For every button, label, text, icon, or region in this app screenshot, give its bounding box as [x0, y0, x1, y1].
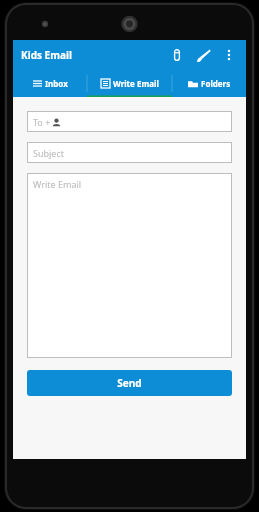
button[interactable]: Theme	[190, 42, 216, 68]
staticText: Write Email	[33, 178, 82, 190]
button[interactable]: Write Email	[87, 70, 172, 97]
staticText: Subject	[33, 147, 65, 159]
staticText: Folders	[201, 78, 231, 89]
staticText: Write Email	[113, 78, 159, 89]
button[interactable]: To +	[27, 111, 232, 132]
button[interactable]: Write Email	[27, 173, 232, 358]
button[interactable]: More options	[216, 42, 242, 68]
button[interactable]: Send	[27, 370, 232, 396]
button[interactable]: Subject	[27, 142, 232, 163]
button[interactable]: Attach file	[164, 42, 190, 68]
staticText: Kids Email	[21, 48, 72, 62]
staticText: Inbox	[45, 78, 68, 89]
button[interactable]: Folders	[172, 70, 246, 97]
staticText: To +	[33, 116, 51, 128]
staticText: Send	[117, 376, 142, 390]
button[interactable]: Inbox	[13, 70, 87, 97]
